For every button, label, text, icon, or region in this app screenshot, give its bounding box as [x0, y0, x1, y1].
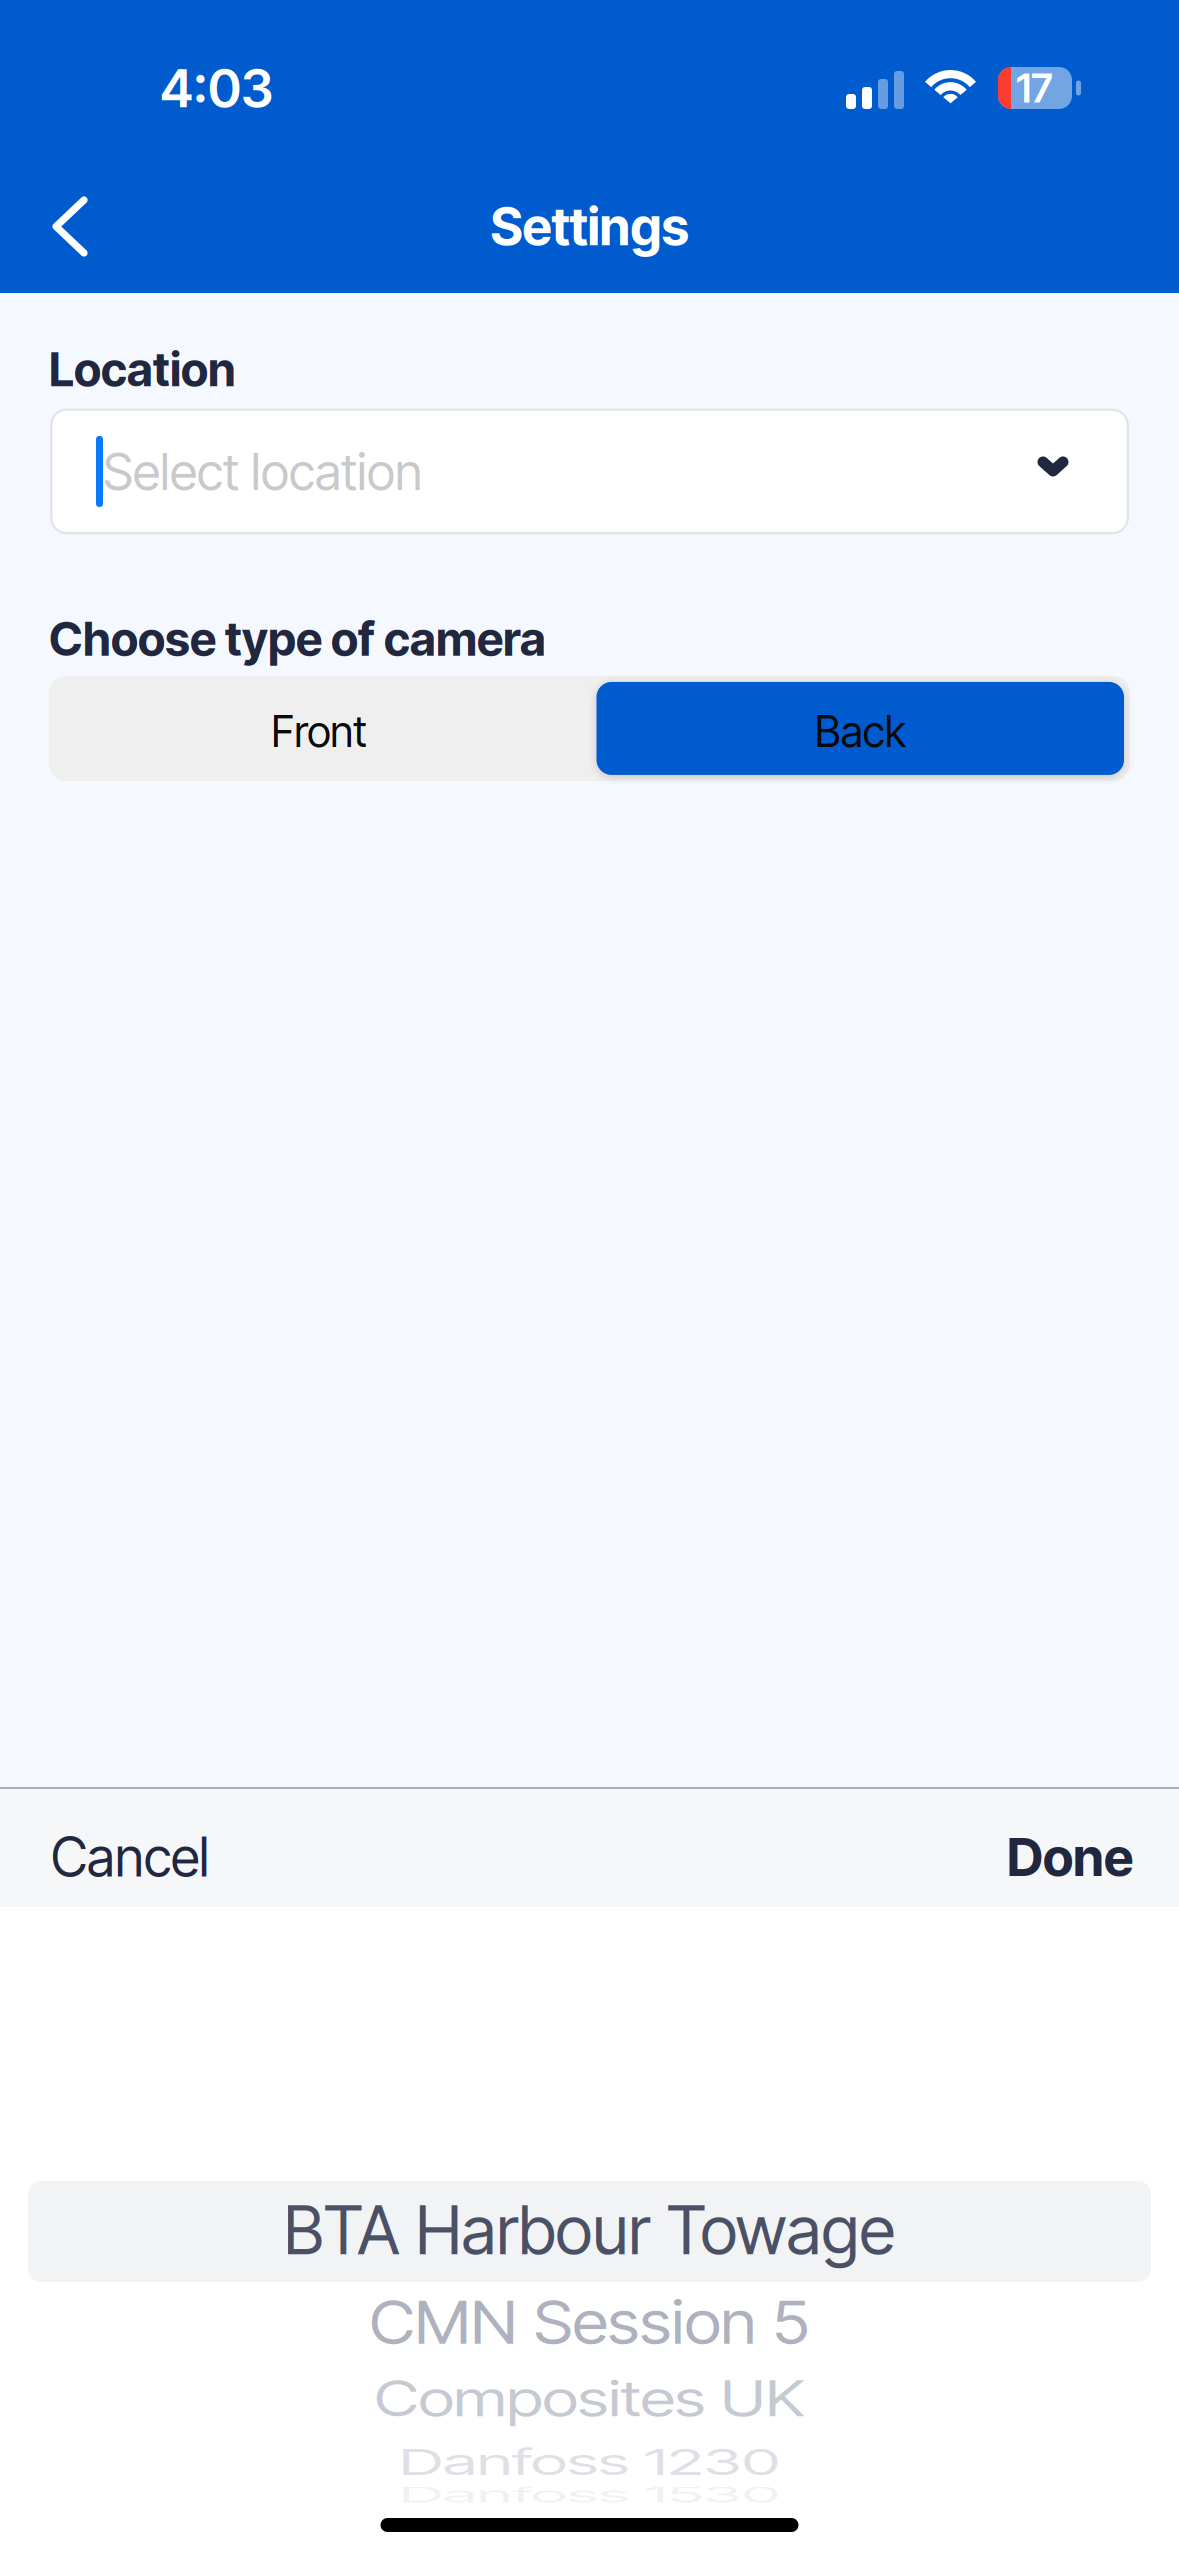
staticText: CMN Session 5: [369, 2282, 809, 2362]
staticText: Composites UK: [374, 2360, 804, 2438]
button[interactable]: Back: [0, 160, 128, 293]
button[interactable]: Cancel: [0, 1777, 209, 1919]
staticText: 17: [1016, 64, 1053, 112]
button[interactable]: Composites UK: [0, 2362, 1179, 2436]
staticText: Settings: [490, 195, 688, 258]
staticText: Select location: [103, 441, 422, 502]
staticText: Choose type of camera: [49, 610, 546, 667]
button[interactable]: Select location: [0, 397, 1179, 534]
button[interactable]: BTA Harbour Towage: [0, 2193, 1179, 2267]
staticText: Danfoss 1230: [399, 2422, 780, 2501]
staticText: BTA Harbour Towage: [283, 2190, 895, 2270]
button[interactable]: Back: [589, 682, 1130, 775]
staticText: Location: [49, 341, 236, 397]
button[interactable]: Front: [49, 676, 589, 781]
staticText: Done: [1007, 1825, 1133, 1888]
staticText: 4:03: [160, 56, 273, 120]
button[interactable]: Danfoss 1230: [0, 2425, 1179, 2499]
staticText: Cancel: [51, 1825, 209, 1889]
button[interactable]: CMN Session 5: [0, 2285, 1179, 2359]
button[interactable]: Danfoss 1530: [0, 2458, 1179, 2532]
staticText: Back: [815, 706, 906, 757]
staticText: Danfoss 1530: [399, 2455, 780, 2534]
button[interactable]: Done: [1007, 1777, 1179, 1918]
staticText: Front: [271, 706, 367, 757]
